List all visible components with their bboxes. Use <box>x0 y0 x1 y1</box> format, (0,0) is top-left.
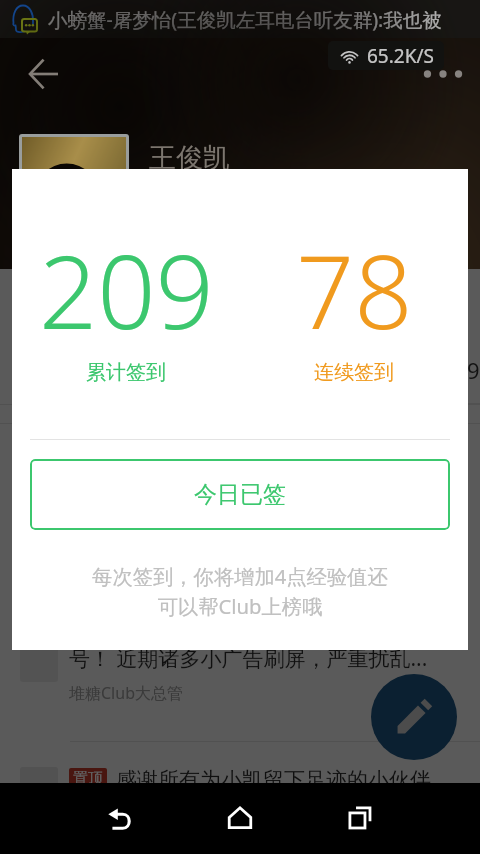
staticText: 78 <box>296 220 413 359</box>
button[interactable]: Recent apps <box>332 790 388 846</box>
staticText: 累计签到 <box>86 360 166 385</box>
staticText: 号！ 近期诸多小广告刷屏，严重扰乱... <box>69 644 428 673</box>
staticText: 连续签到 <box>314 360 394 385</box>
staticText: 小螃蟹-屠梦怡(王俊凯左耳电台听友群):我也被 <box>48 6 442 33</box>
staticText: 感谢所有为小凯留下足迹的小伙伴 <box>116 767 431 793</box>
staticText: 欢迎来到堆糖Club，请勿发布违 <box>69 306 366 335</box>
staticText: 今日已签 <box>194 480 286 509</box>
staticText: 65.2K/S <box>367 43 434 69</box>
button[interactable]: 置顶 <box>0 755 480 825</box>
button[interactable]: 今日已签 <box>30 459 450 530</box>
staticText: 209 <box>39 220 214 359</box>
button[interactable]: Home <box>212 790 268 846</box>
staticText: 王俊凯 <box>149 141 230 175</box>
button[interactable]: More options <box>420 51 466 97</box>
button[interactable]: Back <box>92 790 148 846</box>
staticText: 99 <box>467 355 480 385</box>
staticText: 堆糖Club大总管 <box>69 344 183 366</box>
staticText: 置顶 <box>73 769 103 788</box>
button[interactable]: Back <box>20 50 68 98</box>
button[interactable]: Compose <box>371 674 457 760</box>
button[interactable]: 号！ 近期诸多小广告刷屏，严重扰乱... <box>0 630 480 742</box>
button[interactable]: 欢迎来到堆糖Club，请勿发布违 <box>0 292 480 404</box>
staticText: 每次签到，你将增加4点经验值还 可以帮Club上榜哦 <box>92 562 388 620</box>
staticText: 堆糖Club大总管 <box>69 682 183 704</box>
